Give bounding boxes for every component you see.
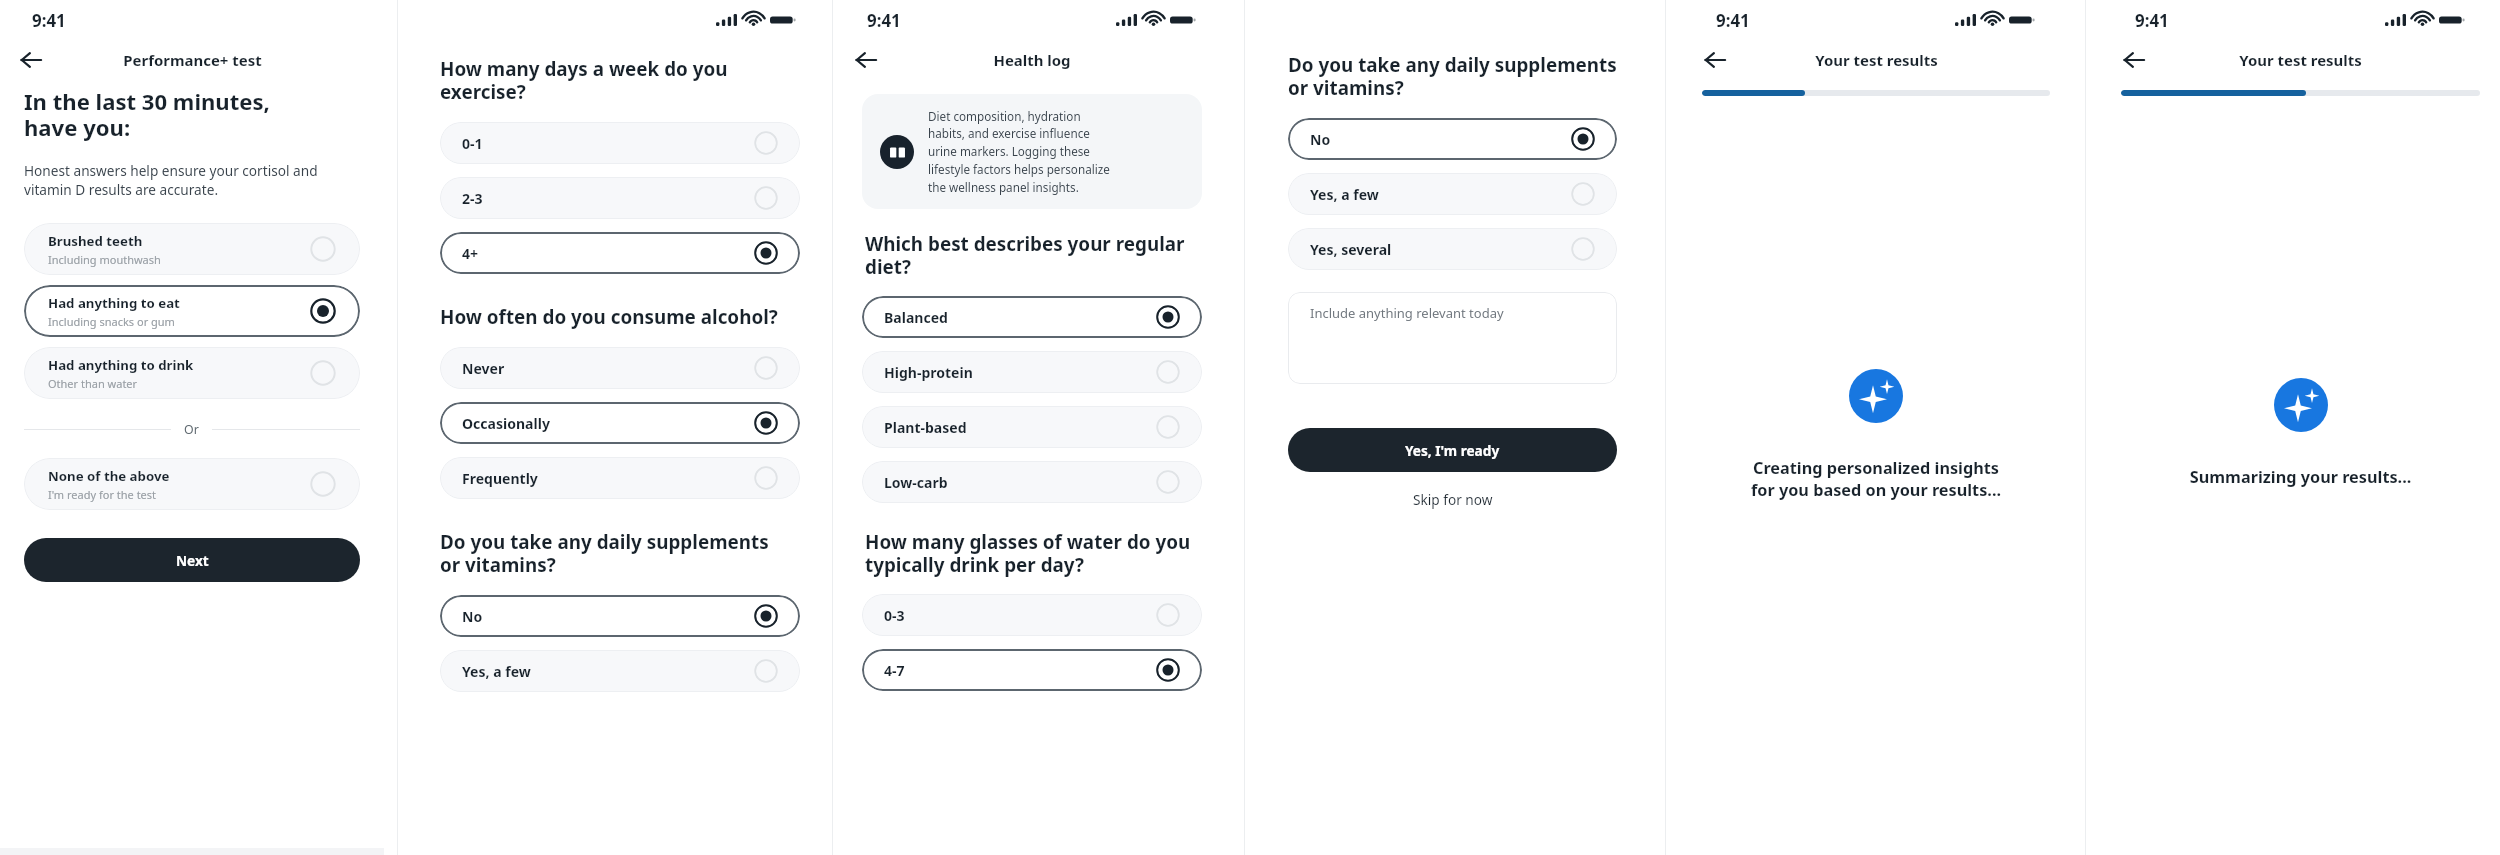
- staticText: Yes, several: [1310, 240, 1392, 259]
- staticText: 9:41: [2135, 9, 2169, 32]
- staticText: Yes, a few: [462, 662, 531, 681]
- staticText: No: [1310, 130, 1331, 149]
- staticText: 4+: [462, 244, 479, 263]
- staticText: I'm ready for the test: [48, 487, 157, 502]
- button[interactable]: None of the above: [24, 458, 360, 510]
- staticText: Balanced: [884, 308, 948, 327]
- staticText: High-protein: [884, 363, 973, 382]
- staticText: Skip for now: [1413, 490, 1493, 509]
- button[interactable]: Include anything relevant today: [1288, 292, 1617, 384]
- staticText: Include anything relevant today: [1310, 304, 1504, 322]
- staticText: No: [462, 607, 483, 626]
- button[interactable]: Had anything to eat: [24, 285, 360, 337]
- staticText: Including snacks or gum: [48, 314, 175, 329]
- button[interactable]: Balanced: [862, 296, 1202, 338]
- staticText: Your test results: [1815, 50, 1938, 70]
- button[interactable]: Plant-based: [862, 406, 1202, 448]
- staticText: Frequently: [462, 469, 538, 488]
- button[interactable]: High-protein: [862, 351, 1202, 393]
- staticText: How many glasses of water do you typical…: [865, 529, 1191, 577]
- staticText: Performance+ test: [123, 50, 262, 70]
- staticText: Which best describes your regular diet?: [865, 231, 1185, 279]
- staticText: Low-carb: [884, 473, 948, 492]
- staticText: Honest answers help ensure your cortisol…: [24, 161, 318, 199]
- button[interactable]: Back: [2116, 42, 2152, 78]
- button[interactable]: Back: [13, 42, 49, 78]
- staticText: Had anything to eat: [48, 294, 180, 312]
- button[interactable]: 4-7: [862, 649, 1202, 691]
- button[interactable]: Low-carb: [862, 461, 1202, 503]
- staticText: Summarizing your results...: [2125, 466, 2476, 488]
- staticText: Occasionally: [462, 414, 550, 433]
- staticText: Including mouthwash: [48, 252, 161, 267]
- button[interactable]: Occasionally: [440, 402, 800, 444]
- staticText: 9:41: [1716, 9, 1750, 32]
- staticText: Diet composition, hydration habits, and …: [928, 108, 1110, 195]
- staticText: Or: [184, 421, 199, 438]
- button[interactable]: Yes, a few: [1288, 173, 1617, 215]
- button[interactable]: Yes, several: [1288, 228, 1617, 270]
- button[interactable]: 0-3: [862, 594, 1202, 636]
- staticText: 0-1: [462, 134, 483, 153]
- staticText: Creating personalized insights for you b…: [1706, 457, 2046, 501]
- staticText: 9:41: [867, 9, 901, 32]
- button[interactable]: Brushed teeth: [24, 223, 360, 275]
- button[interactable]: No: [1288, 118, 1617, 160]
- staticText: Do you take any daily supplements or vit…: [440, 529, 769, 577]
- staticText: How often do you consume alcohol?: [440, 304, 778, 330]
- staticText: Do you take any daily supplements or vit…: [1288, 52, 1617, 100]
- staticText: 2-3: [462, 189, 483, 208]
- staticText: Health log: [993, 50, 1071, 70]
- staticText: How many days a week do you exercise?: [440, 56, 728, 104]
- staticText: 9:41: [32, 9, 66, 32]
- staticText: Yes, a few: [1310, 185, 1379, 204]
- staticText: Yes, I'm ready: [1405, 441, 1500, 460]
- button[interactable]: No: [440, 595, 800, 637]
- staticText: Never: [462, 359, 505, 378]
- staticText: None of the above: [48, 467, 170, 485]
- staticText: Other than water: [48, 376, 138, 391]
- staticText: Your test results: [2239, 50, 2362, 70]
- staticText: Brushed teeth: [48, 232, 143, 250]
- staticText: Had anything to drink: [48, 356, 194, 374]
- button[interactable]: Had anything to drink: [24, 347, 360, 399]
- button[interactable]: Never: [440, 347, 800, 389]
- button[interactable]: 0-1: [440, 122, 800, 164]
- staticText: 0-3: [884, 606, 905, 625]
- staticText: Next: [176, 551, 209, 570]
- button[interactable]: Skip for now: [1288, 484, 1617, 514]
- staticText: In the last 30 minutes, have you:: [24, 86, 270, 143]
- button[interactable]: Back: [1697, 42, 1733, 78]
- staticText: Plant-based: [884, 418, 967, 437]
- button[interactable]: Frequently: [440, 457, 800, 499]
- button[interactable]: Yes, a few: [440, 650, 800, 692]
- button[interactable]: 4+: [440, 232, 800, 274]
- button[interactable]: 2-3: [440, 177, 800, 219]
- button[interactable]: Next: [24, 538, 360, 582]
- button[interactable]: Back: [848, 42, 884, 78]
- staticText: 4-7: [884, 661, 905, 680]
- button[interactable]: Yes, I'm ready: [1288, 428, 1617, 472]
